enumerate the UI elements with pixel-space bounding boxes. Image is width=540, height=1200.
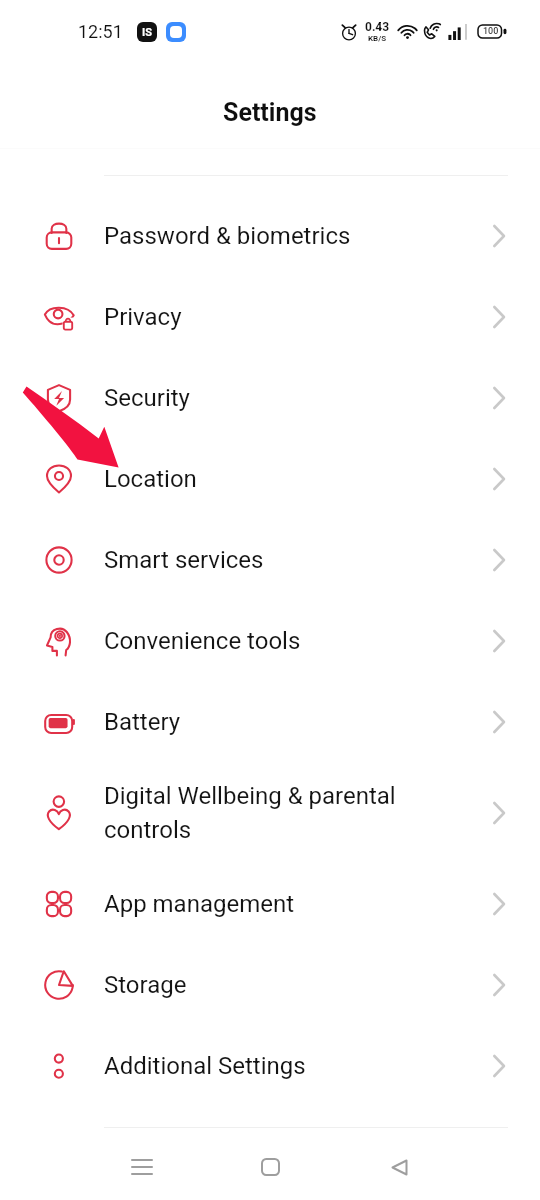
staticText: Additional Settings — [104, 1052, 480, 1080]
button[interactable]: Convenience tools — [0, 600, 540, 681]
button[interactable]: Smart services — [0, 519, 540, 600]
button[interactable]: Recent apps — [77, 1131, 206, 1200]
button[interactable]: Back — [335, 1131, 464, 1200]
staticText: IS — [142, 26, 152, 39]
staticText: 0.43 — [365, 20, 390, 34]
staticText: 12:51 — [78, 21, 123, 42]
button[interactable]: App management — [0, 863, 540, 944]
button[interactable]: Battery — [0, 681, 540, 762]
button[interactable]: Location — [0, 438, 540, 519]
staticText: Password & biometrics — [104, 222, 480, 250]
button[interactable]: Additional Settings — [0, 1025, 540, 1106]
button[interactable]: Home — [206, 1131, 335, 1200]
staticText: Convenience tools — [104, 627, 480, 655]
staticText: KB/S — [368, 34, 387, 43]
staticText: Battery — [104, 708, 480, 736]
staticText: Storage — [104, 971, 480, 999]
staticText: Privacy — [104, 303, 480, 331]
button[interactable]: Password & biometrics — [0, 195, 540, 276]
button[interactable]: Storage — [0, 944, 540, 1025]
staticText: Settings — [223, 98, 317, 127]
staticText: Smart services — [104, 546, 480, 574]
staticText: Location — [104, 465, 480, 493]
staticText: Digital Wellbeing & parental controls — [104, 782, 480, 843]
button[interactable]: Security — [0, 357, 540, 438]
staticText: Security — [104, 384, 480, 412]
button[interactable]: Privacy — [0, 276, 540, 357]
staticText: 100 — [483, 26, 499, 37]
button[interactable]: Digital Wellbeing & parental controls — [0, 762, 540, 863]
staticText: App management — [104, 890, 480, 918]
